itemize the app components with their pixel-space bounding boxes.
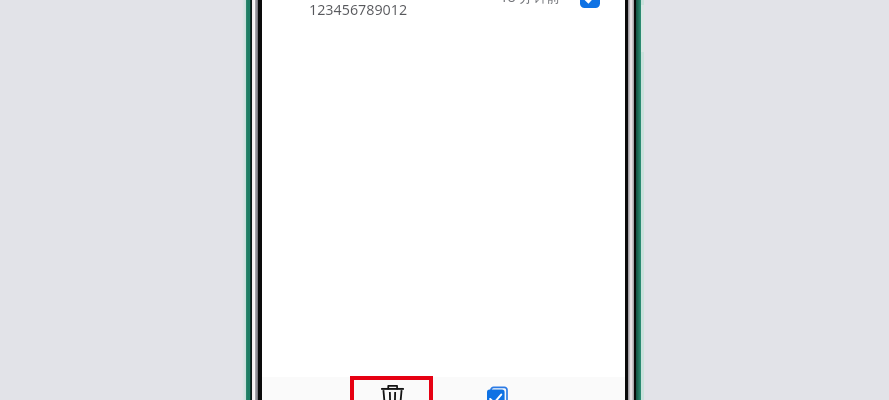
button[interactable]: Select all bbox=[487, 387, 507, 400]
staticText: 18 分钟前 bbox=[500, 0, 560, 6]
button[interactable]: Item selected bbox=[580, 0, 600, 8]
button[interactable]: Delete bbox=[350, 376, 433, 400]
staticText: 123456789012 bbox=[309, 0, 408, 19]
